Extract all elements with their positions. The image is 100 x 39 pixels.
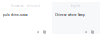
button[interactable]: Copy bbox=[91, 30, 94, 33]
button[interactable]: Romanian - detected bbox=[11, 4, 40, 8]
staticText: Chinese whore Scrap bbox=[55, 13, 85, 17]
staticText: pula chino-rusica bbox=[3, 13, 28, 17]
button[interactable]: Copy bbox=[43, 30, 46, 33]
staticText: English bbox=[70, 4, 80, 8]
button[interactable]: Listen bbox=[37, 30, 40, 33]
staticText: Romanian - detected bbox=[11, 4, 40, 8]
button[interactable]: Listen bbox=[85, 30, 88, 33]
